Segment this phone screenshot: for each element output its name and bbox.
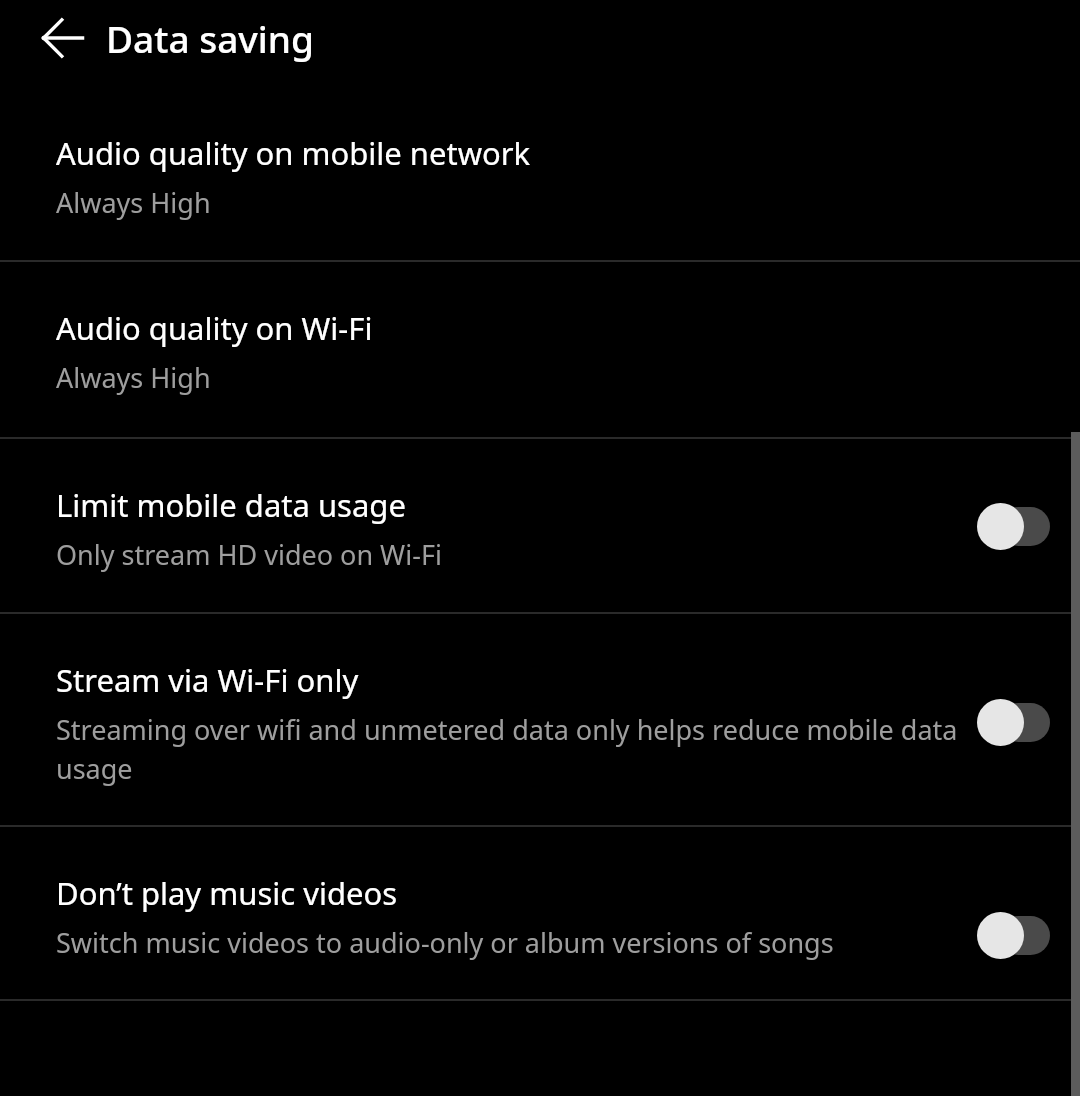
staticText: Stream via Wi-Fi only [56, 662, 359, 700]
button[interactable]: Don’t play music videos [977, 912, 1050, 959]
staticText: Audio quality on Wi-Fi [56, 310, 373, 348]
staticText: Don’t play music videos [56, 875, 398, 913]
staticText: Streaming over wifi and unmetered data o… [56, 709, 959, 787]
staticText: Switch music videos to audio-only or alb… [56, 922, 834, 961]
button[interactable]: Stream via Wi-Fi only [0, 614, 1080, 825]
staticText: Always High [56, 357, 211, 396]
staticText: Data saving [106, 13, 314, 63]
staticText: Limit mobile data usage [56, 487, 406, 525]
button[interactable]: Limit mobile data usage [0, 439, 1080, 612]
staticText: Only stream HD video on Wi-Fi [56, 534, 442, 573]
button[interactable]: Back [30, 7, 92, 69]
button[interactable]: Audio quality on mobile network [0, 76, 1080, 260]
staticText: Audio quality on mobile network [56, 135, 531, 173]
button[interactable]: Audio quality on Wi-Fi [0, 262, 1080, 437]
staticText: Always High [56, 182, 211, 221]
button[interactable]: Don’t play music videos [0, 827, 1080, 999]
button[interactable]: Limit mobile data usage [977, 503, 1050, 550]
button[interactable]: Stream via Wi-Fi only [977, 699, 1050, 746]
